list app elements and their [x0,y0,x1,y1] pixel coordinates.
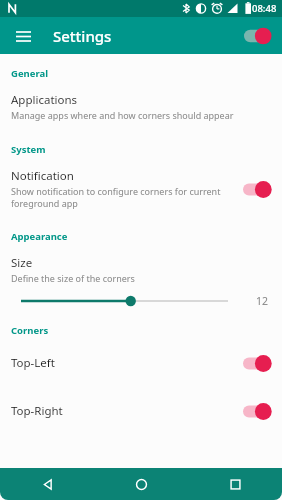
button[interactable]: Toggle [240,400,274,422]
staticText: System [11,143,282,156]
staticText: Size [11,255,33,271]
button[interactable]: Master toggle [240,22,274,50]
button[interactable]: Toggle [240,178,274,200]
staticText: Top-Right [11,403,240,419]
staticText: Notification [11,168,74,184]
button[interactable]: Back [0,468,94,500]
staticText: 12 [256,294,269,308]
staticText: Manage apps where and how corners should… [11,109,234,121]
staticText: Applications [11,92,78,108]
button[interactable]: Open navigation menu [10,23,36,49]
staticText: Define the size of the corners [11,272,135,284]
button[interactable]: Size [0,245,282,288]
staticText: Show notification to configure corners f… [11,185,234,209]
button[interactable]: Home [94,468,188,500]
staticText: General [11,67,282,80]
button[interactable]: Applications [0,82,282,129]
staticText: 08:48 [252,2,277,15]
button[interactable]: 12 [0,288,282,314]
staticText: Corners [11,324,282,337]
button[interactable]: Toggle [240,352,274,374]
staticText: Settings [53,26,112,46]
button[interactable]: Top-Right [0,387,282,435]
button[interactable]: Top-Left [0,339,282,387]
staticText: Appearance [11,230,282,243]
staticText: Top-Left [11,355,240,371]
button[interactable]: Notification [0,158,282,217]
button[interactable]: Recent apps [188,468,282,500]
